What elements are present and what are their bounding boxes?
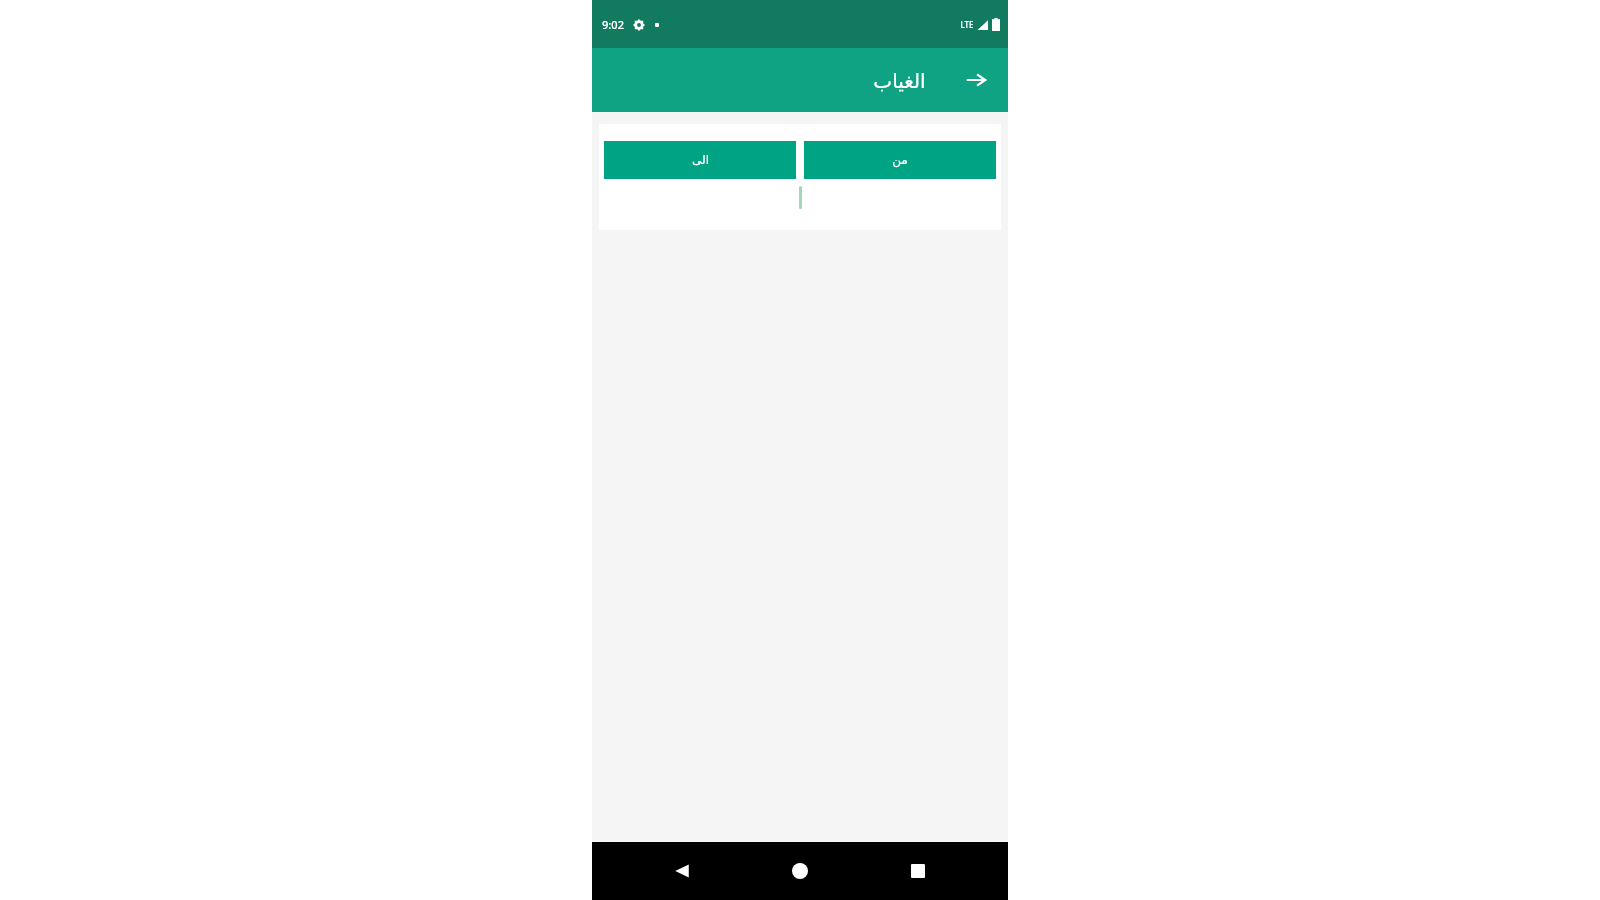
staticText: الغياب [873, 69, 926, 92]
button[interactable]: Back [952, 56, 1000, 104]
button[interactable]: من [804, 141, 996, 179]
staticText: 9:02 [602, 17, 624, 32]
button[interactable]: Recent apps [890, 843, 946, 899]
button[interactable]: الى [604, 141, 796, 179]
button[interactable]: Back [654, 843, 710, 899]
staticText: من [892, 153, 908, 167]
staticText: LTE [960, 19, 974, 30]
staticText: الى [692, 153, 709, 167]
button[interactable]: Home [772, 843, 828, 899]
